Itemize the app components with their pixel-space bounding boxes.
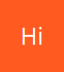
- staticText: Hi: [20, 21, 43, 51]
